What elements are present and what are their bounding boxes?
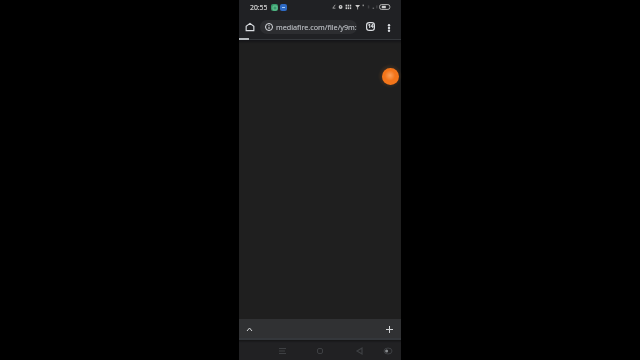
- staticText: 20:55: [250, 3, 268, 12]
- button[interactable]: More options: [380, 19, 397, 36]
- staticText: 14: [368, 23, 374, 30]
- button[interactable]: Eye comfort: [379, 342, 397, 360]
- button[interactable]: Download: [382, 68, 399, 85]
- button[interactable]: Back: [350, 342, 368, 360]
- staticText: mediafire.com/file/y9m:: [276, 22, 357, 32]
- button[interactable]: mediafire.com/file/y9m:: [260, 20, 357, 34]
- button[interactable]: Home: [311, 342, 329, 360]
- button[interactable]: Expand toolbar: [241, 321, 257, 337]
- button[interactable]: Recents: [273, 342, 291, 360]
- button[interactable]: Home: [241, 18, 258, 35]
- button[interactable]: Tabs: [362, 18, 379, 35]
- button[interactable]: New tab: [381, 321, 397, 337]
